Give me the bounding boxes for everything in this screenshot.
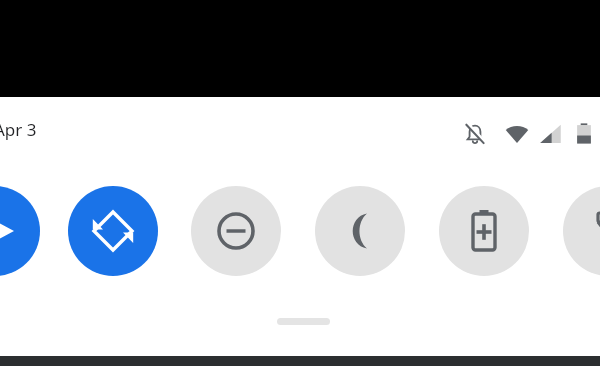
other: Notifications silenced [462,121,488,147]
other: Mobile signal [538,121,564,147]
button[interactable]: Battery Saver [439,186,529,276]
button[interactable]: Flashlight [563,186,600,276]
button[interactable]: Expand quick settings [277,318,330,325]
other: Battery [573,121,595,147]
staticText: Apr 3 [0,118,37,141]
button[interactable]: Location [0,186,40,276]
button[interactable]: Do Not Disturb [191,186,281,276]
button[interactable]: Dark theme [315,186,405,276]
button[interactable]: Apr 3 [0,118,37,141]
button[interactable]: Auto-rotate [68,186,158,276]
other: Wi-Fi [504,121,530,147]
